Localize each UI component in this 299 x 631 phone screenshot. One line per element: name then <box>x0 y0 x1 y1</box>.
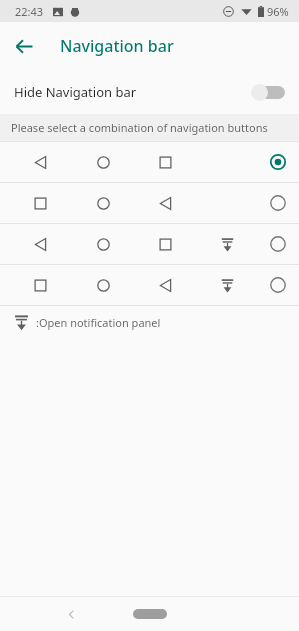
button[interactable]: Navigation button combination <box>0 183 299 223</box>
button[interactable]: Navigation button combination <box>0 265 299 305</box>
staticText: Please select a combination of navigatio… <box>11 120 268 135</box>
staticText: Hide Navigation bar <box>14 83 251 101</box>
button[interactable]: Hide Navigation bar <box>0 70 299 114</box>
staticText: Navigation bar <box>60 35 174 57</box>
button[interactable]: Navigation button combination, selected <box>0 142 299 182</box>
button[interactable]: Navigation button combination <box>0 224 299 264</box>
staticText: :Open notification panel <box>36 315 161 330</box>
button[interactable]: Back <box>58 601 84 627</box>
button[interactable]: Back <box>6 28 42 64</box>
staticText: 96% <box>267 4 289 19</box>
button[interactable]: Home <box>133 609 167 619</box>
staticText: 22:43 <box>15 4 44 19</box>
